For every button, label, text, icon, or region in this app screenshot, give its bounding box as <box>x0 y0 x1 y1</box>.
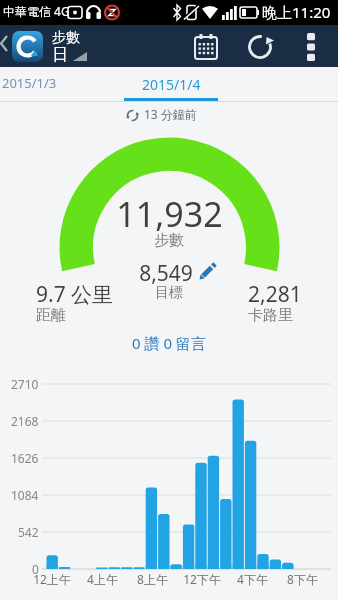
staticText: 13 分鐘前 <box>144 106 197 122</box>
staticText: 步數 <box>52 29 80 47</box>
staticText: 2710 <box>11 376 39 392</box>
staticText: 8上午 <box>137 571 168 587</box>
staticText: 2,281 <box>248 280 302 309</box>
staticText: 4上午 <box>87 571 118 587</box>
staticText: 距離 <box>36 306 66 325</box>
staticText: 4下午 <box>237 571 268 587</box>
button[interactable] <box>238 25 283 67</box>
button[interactable] <box>12 31 43 62</box>
staticText: 0 讚 0 留言 <box>132 333 206 353</box>
button[interactable]: 2015/1/4 <box>124 67 218 101</box>
staticText: 2168 <box>11 413 39 429</box>
staticText: 中華電信 4G <box>3 3 70 19</box>
staticText: 9.7 公里 <box>36 280 114 309</box>
staticText: 日 <box>52 45 68 65</box>
staticText: 542 <box>18 524 39 540</box>
staticText: 晚上11:20 <box>262 2 331 22</box>
button[interactable]: 0 讚 0 留言 <box>110 330 228 356</box>
staticText: 0 <box>32 561 39 577</box>
staticText: 11,932 <box>116 191 223 237</box>
button[interactable]: 13 分鐘前 <box>0 102 338 128</box>
staticText: 8,549 <box>139 259 193 288</box>
staticText: 目標 <box>155 284 183 302</box>
button[interactable]: 2015/1/3 <box>0 67 112 98</box>
staticText: 卡路里 <box>248 306 293 325</box>
staticText: 1626 <box>11 450 39 466</box>
staticText: 12下午 <box>183 571 221 587</box>
staticText: 8下午 <box>287 571 318 587</box>
staticText: 12上午 <box>33 571 71 587</box>
staticText: 2015/1/3 <box>2 74 57 92</box>
button[interactable] <box>295 25 328 67</box>
staticText: 1084 <box>11 487 39 503</box>
staticText: 步數 <box>154 231 184 250</box>
button[interactable] <box>185 25 230 67</box>
staticText: 2015/1/4 <box>142 75 201 94</box>
